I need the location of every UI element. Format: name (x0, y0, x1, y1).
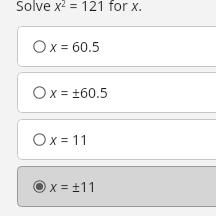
button[interactable]: x = ±11 (17, 166, 216, 207)
staticText: x = 60.5 (50, 37, 100, 56)
button[interactable]: x = 11 (17, 119, 216, 160)
staticText: Solve x2 = 121 for x. (16, 0, 142, 15)
staticText: x = 11 (50, 130, 89, 149)
staticText: x = ±11 (50, 177, 97, 196)
button[interactable]: x = 60.5 (17, 26, 216, 67)
staticText: x = ±60.5 (50, 83, 108, 102)
button[interactable]: x = ±60.5 (17, 72, 216, 113)
